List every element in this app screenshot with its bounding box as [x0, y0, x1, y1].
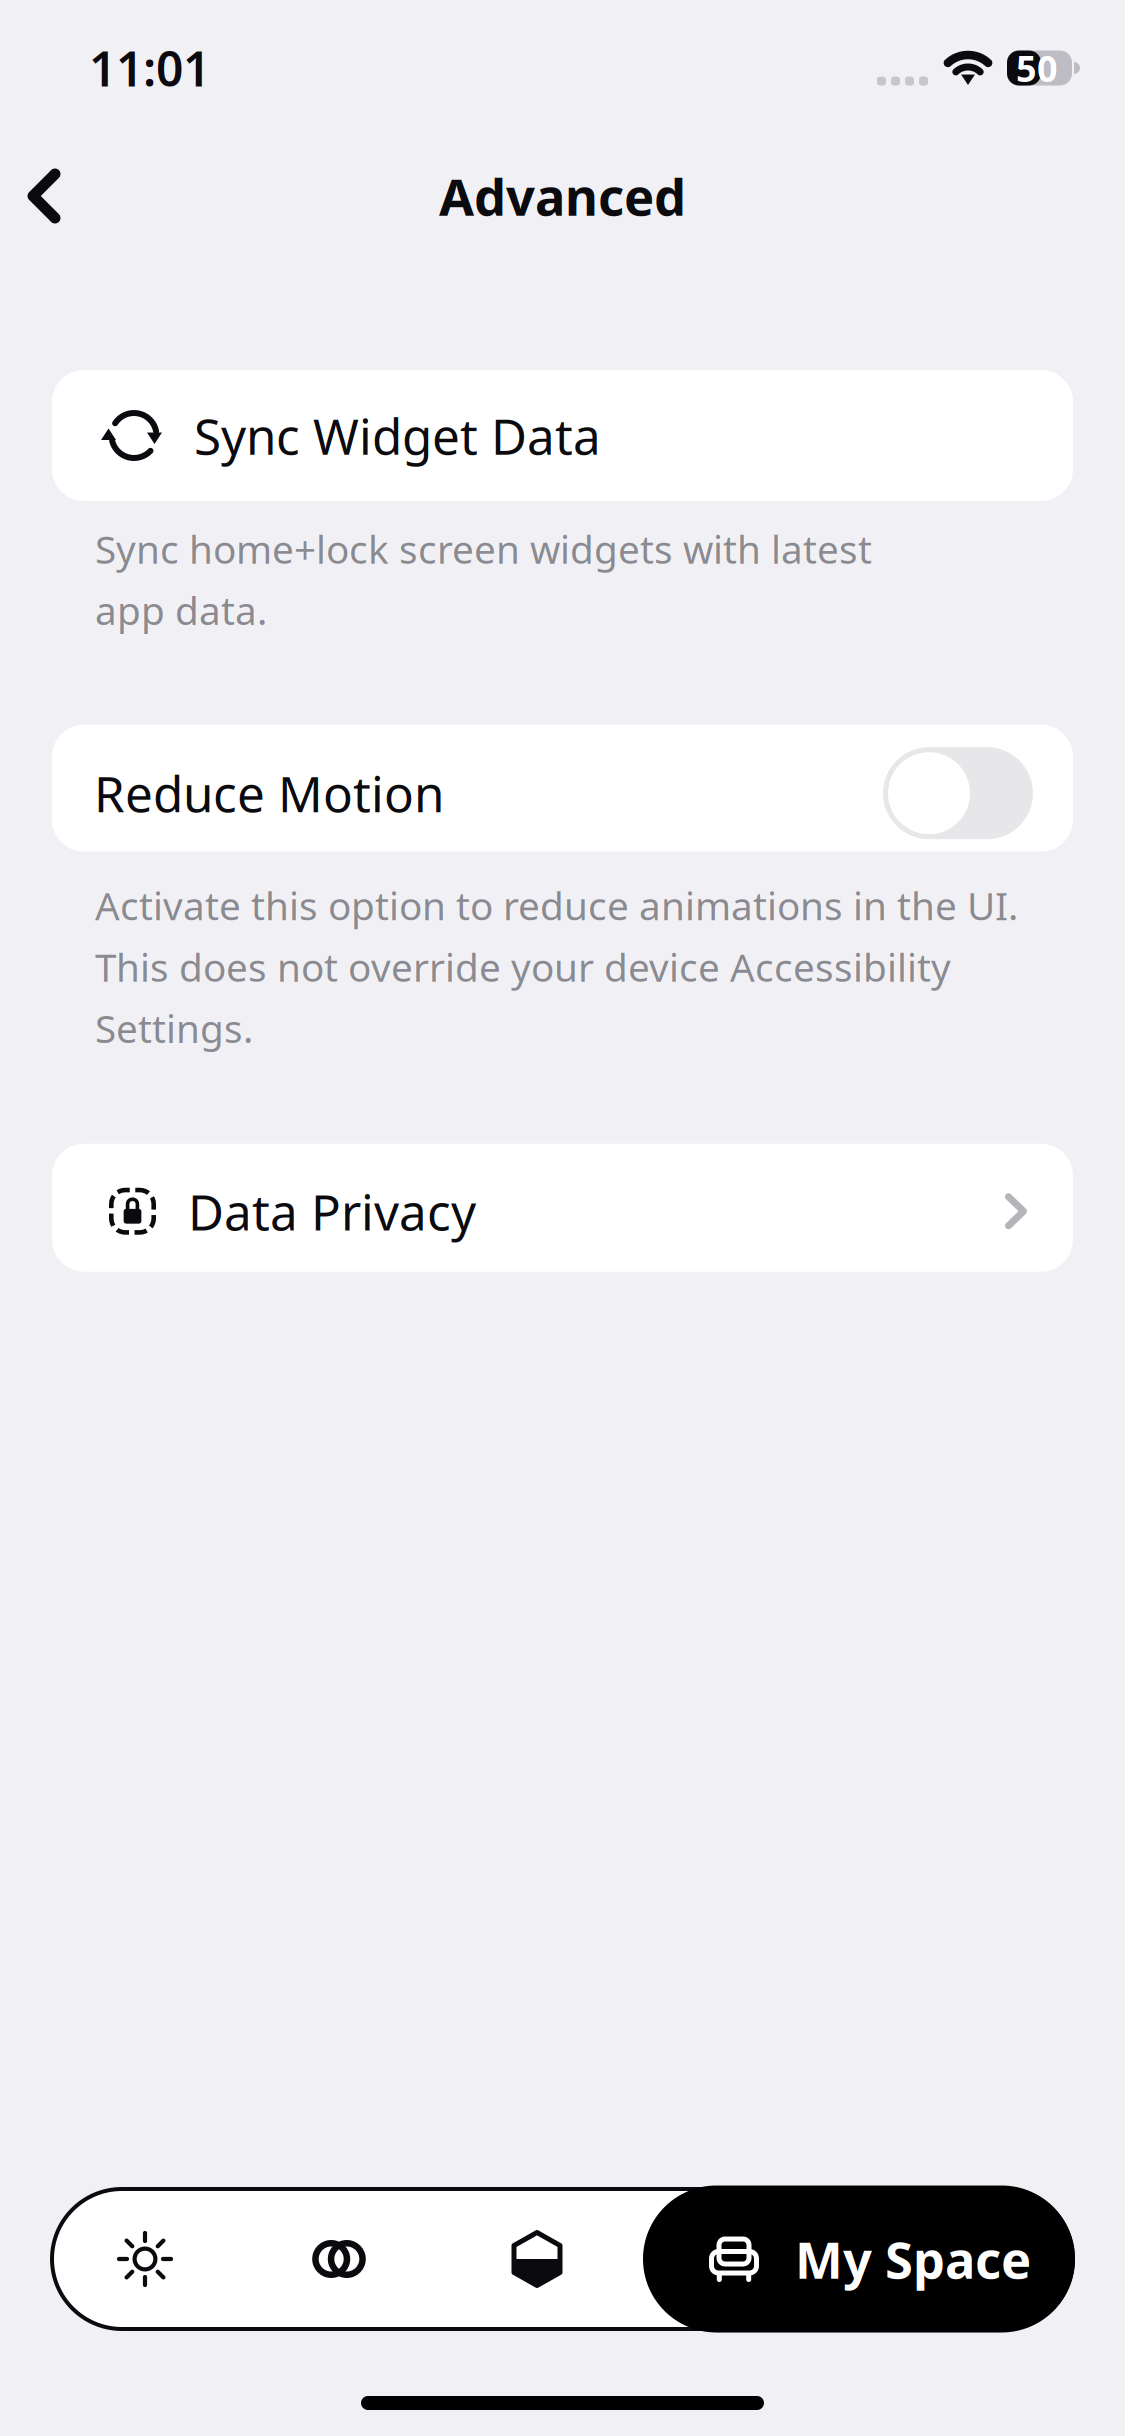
staticText: 11:01 — [89, 36, 210, 100]
staticText: Sync home+lock screen widgets with lates… — [95, 523, 872, 636]
staticText: 50 — [1016, 44, 1058, 92]
button[interactable]: Appearance — [240, 2187, 438, 2331]
button[interactable]: Brightness — [50, 2187, 240, 2331]
button[interactable]: Data Privacy — [52, 1144, 1073, 1272]
staticText: Data Privacy — [188, 1178, 476, 1244]
button[interactable]: Shapes — [438, 2187, 636, 2331]
staticText: Reduce Motion — [94, 760, 444, 826]
staticText: Advanced — [439, 162, 686, 230]
staticText: Sync Widget Data — [194, 403, 601, 468]
button[interactable]: Reduce Motion — [52, 725, 1073, 852]
button[interactable]: My Space — [643, 2185, 1075, 2332]
staticText: Activate this option to reduce animation… — [95, 880, 1018, 1054]
button[interactable]: Sync Widget Data — [52, 370, 1073, 501]
staticText: My Space — [795, 2225, 1031, 2293]
button[interactable]: Back — [0, 150, 96, 242]
